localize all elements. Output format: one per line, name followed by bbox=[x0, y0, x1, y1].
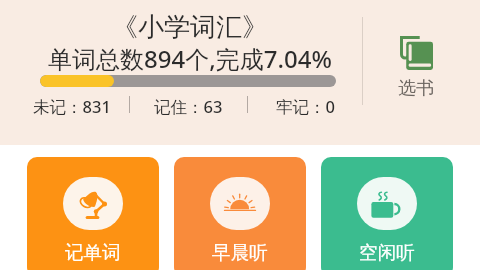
staticText: 单词总数894个,完成7.04% bbox=[48, 42, 332, 75]
staticText: 记单词 bbox=[65, 241, 121, 264]
staticText: 牢记：0 bbox=[276, 95, 335, 118]
staticText: 空闲听 bbox=[359, 241, 415, 264]
staticText: 早晨听 bbox=[212, 241, 268, 264]
button[interactable]: 选书 bbox=[379, 35, 452, 100]
button[interactable]: 空闲听 bbox=[321, 157, 453, 270]
button[interactable]: 记单词 bbox=[27, 157, 159, 270]
staticText: 未记：831 bbox=[33, 95, 111, 118]
staticText: 选书 bbox=[398, 77, 434, 100]
staticText: 《小学词汇》 bbox=[112, 11, 268, 44]
button[interactable]: 早晨听 bbox=[174, 157, 306, 270]
staticText: 记住：63 bbox=[154, 95, 223, 118]
